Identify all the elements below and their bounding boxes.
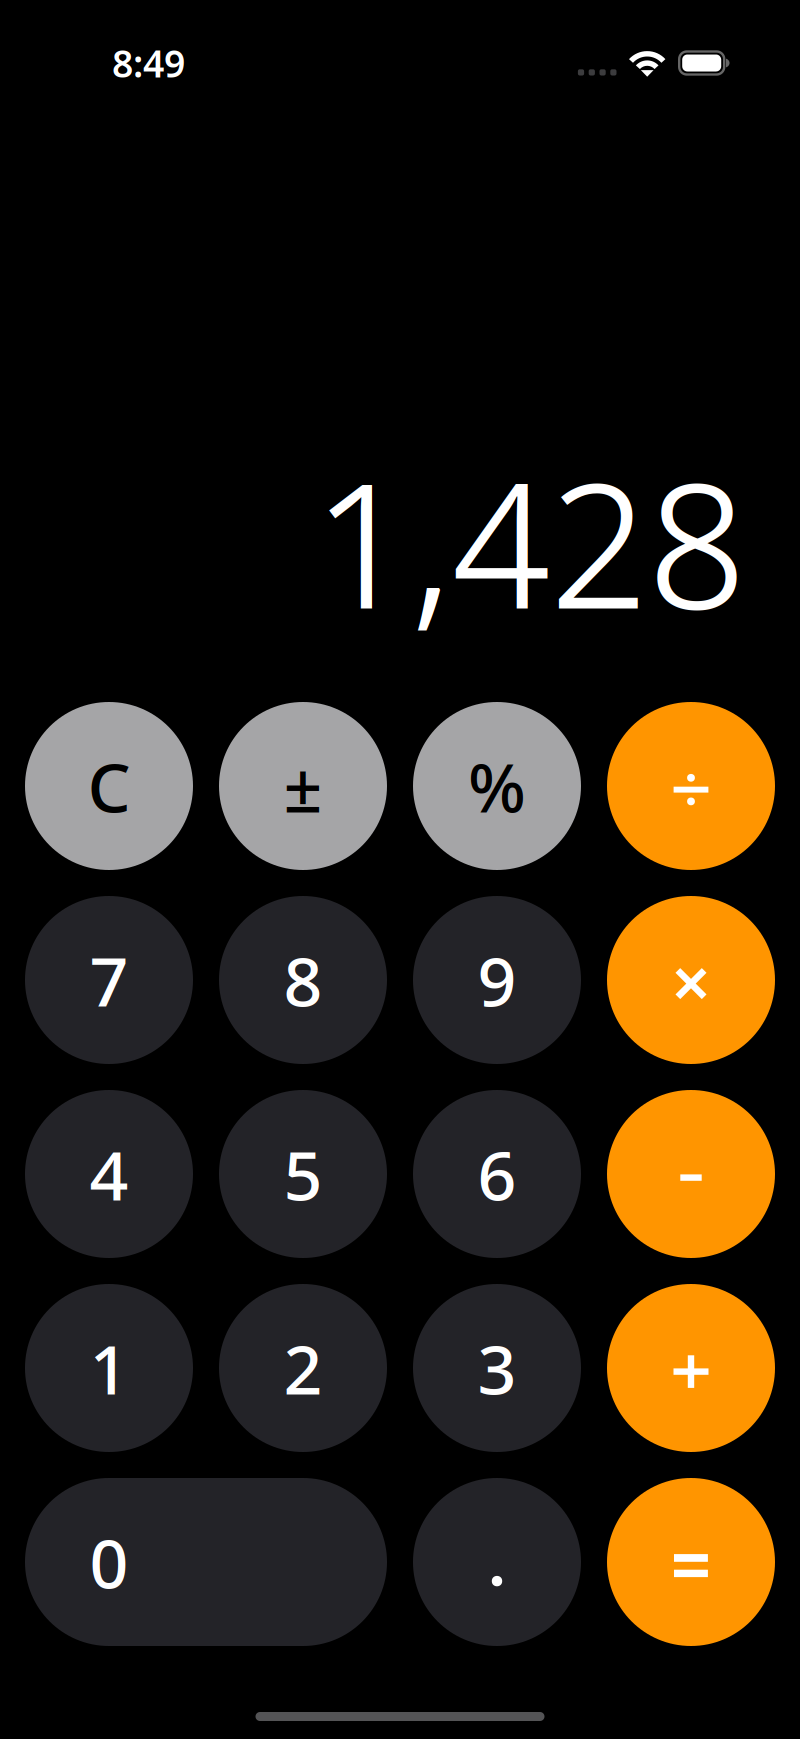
- staticText: 7: [89, 935, 128, 1025]
- staticText: 9: [477, 935, 516, 1025]
- button[interactable]: Multiply: [607, 896, 775, 1064]
- button[interactable]: Equals: [607, 1478, 775, 1646]
- button[interactable]: C: [25, 702, 193, 870]
- staticText: %: [468, 741, 526, 831]
- button[interactable]: ±: [219, 702, 387, 870]
- staticText: C: [87, 741, 130, 831]
- button[interactable]: Minus: [607, 1090, 775, 1258]
- button[interactable]: 9: [413, 896, 581, 1064]
- staticText: 8:49: [112, 38, 185, 88]
- button[interactable]: Divide: [607, 702, 775, 870]
- staticText: 1: [89, 1323, 128, 1413]
- button[interactable]: 2: [219, 1284, 387, 1452]
- button[interactable]: 1: [25, 1284, 193, 1452]
- staticText: 2: [283, 1323, 322, 1413]
- staticText: 5: [283, 1129, 322, 1219]
- button[interactable]: 3: [413, 1284, 581, 1452]
- button[interactable]: 4: [25, 1090, 193, 1258]
- button[interactable]: 7: [25, 896, 193, 1064]
- button[interactable]: Plus: [607, 1284, 775, 1452]
- button[interactable]: 0: [25, 1478, 387, 1646]
- staticText: 8: [283, 935, 322, 1025]
- staticText: 0: [89, 1517, 128, 1607]
- staticText: 3: [477, 1323, 516, 1413]
- staticText: ±: [283, 741, 322, 831]
- button[interactable]: Decimal point: [413, 1478, 581, 1646]
- button[interactable]: 6: [413, 1090, 581, 1258]
- staticText: 1,428: [313, 425, 746, 659]
- button[interactable]: %: [413, 702, 581, 870]
- button[interactable]: 5: [219, 1090, 387, 1258]
- staticText: 4: [89, 1129, 128, 1219]
- staticText: 6: [477, 1129, 516, 1219]
- button[interactable]: 8: [219, 896, 387, 1064]
